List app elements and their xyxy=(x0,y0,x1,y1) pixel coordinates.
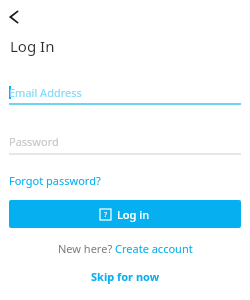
button[interactable]: Email Address xyxy=(9,84,241,105)
button[interactable]: Skip for now xyxy=(91,269,160,284)
staticText: Log in xyxy=(117,207,150,222)
button[interactable]: Password xyxy=(9,134,241,155)
button[interactable]: New here? Create account xyxy=(58,241,193,256)
button[interactable]: Forgot password? xyxy=(9,173,101,188)
staticText: Email Address xyxy=(9,85,82,100)
staticText: ? xyxy=(104,210,108,220)
staticText: Log In xyxy=(10,36,55,56)
button[interactable]: Back xyxy=(2,5,26,29)
staticText: Password xyxy=(9,134,59,149)
button[interactable]: ? xyxy=(9,200,241,228)
staticText: New here? Create account xyxy=(58,241,193,256)
staticText: Skip for now xyxy=(91,269,160,284)
staticText: Forgot password? xyxy=(9,173,101,188)
